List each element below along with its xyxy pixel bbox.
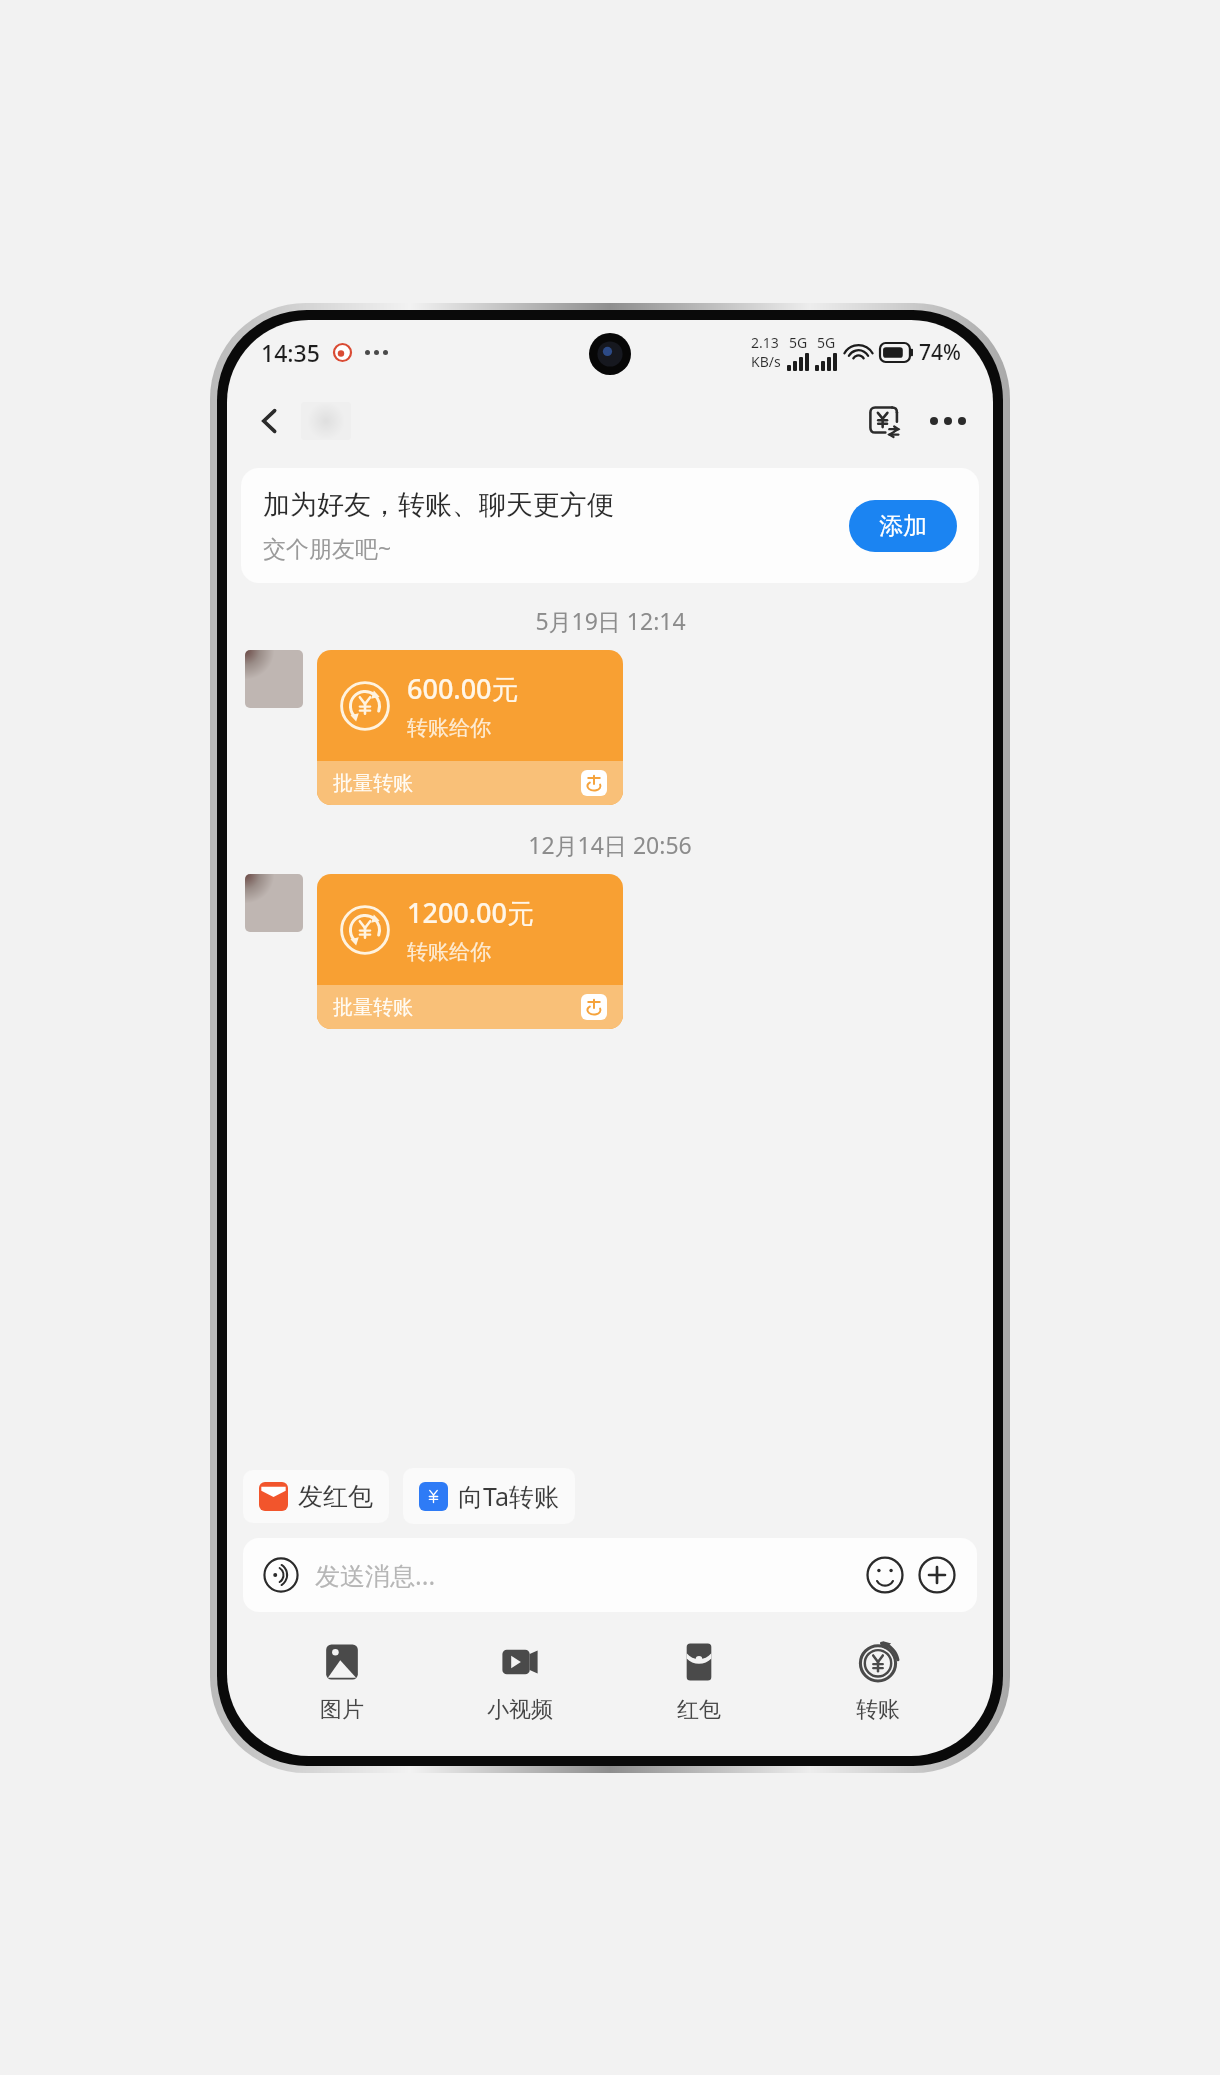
staticText: 批量转账	[333, 771, 413, 796]
button[interactable]: Voice message	[261, 1555, 301, 1595]
staticText: 1200.00元	[407, 894, 535, 931]
staticText: 红包	[677, 1696, 721, 1724]
button[interactable]: 转账	[788, 1634, 967, 1730]
staticText: 加为好友，转账、聊天更方便	[263, 488, 614, 522]
button[interactable]: Emoji	[863, 1553, 907, 1597]
staticText: 74%	[919, 338, 961, 367]
staticText: 发红包	[298, 1481, 373, 1512]
staticText: 批量转账	[333, 995, 413, 1020]
button[interactable]: 600.00元	[317, 650, 623, 805]
button[interactable]: 添加	[849, 500, 957, 552]
staticText: 添加	[879, 511, 927, 541]
button[interactable]: 图片	[253, 1634, 431, 1730]
staticText: 600.00元	[407, 670, 519, 707]
button[interactable]: 发红包	[243, 1470, 389, 1523]
button[interactable]: 向Ta转账	[403, 1468, 575, 1524]
button[interactable]	[245, 650, 303, 708]
staticText: 转账给你	[407, 939, 491, 965]
staticText: KB/s	[751, 352, 781, 371]
button[interactable]	[301, 402, 351, 440]
staticText: 5月19日 12:14	[535, 605, 686, 636]
staticText: 交个朋友吧~	[263, 532, 392, 563]
button[interactable]: Back	[243, 394, 297, 448]
button[interactable]: Voice message	[243, 1538, 977, 1612]
staticText: 发送消息...	[315, 1558, 436, 1592]
staticText: 向Ta转账	[458, 1479, 559, 1513]
button[interactable]: 红包	[609, 1634, 788, 1730]
staticText: 转账给你	[407, 715, 491, 741]
staticText: 5G	[789, 333, 808, 352]
staticText: 14:35	[261, 337, 320, 368]
button[interactable]: More	[915, 1553, 959, 1597]
button[interactable]	[245, 874, 303, 932]
staticText: 转账	[856, 1696, 900, 1724]
button[interactable]: Transfer	[857, 394, 911, 448]
button[interactable]: 1200.00元	[317, 874, 623, 1029]
button[interactable]: More options	[921, 394, 975, 448]
staticText: 5G	[817, 333, 836, 352]
button[interactable]: 加为好友，转账、聊天更方便	[241, 468, 979, 583]
staticText: 图片	[320, 1696, 364, 1724]
staticText: 12月14日 20:56	[528, 829, 692, 860]
staticText: 小视频	[487, 1696, 553, 1724]
staticText: 2.13	[751, 333, 779, 352]
button[interactable]: 小视频	[431, 1634, 609, 1730]
